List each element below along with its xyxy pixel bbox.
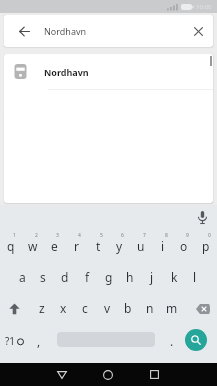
staticText: 6 [121,232,124,239]
button[interactable]: b [118,298,138,318]
staticText: a [19,269,26,285]
staticText: Nordhavn [44,25,87,37]
staticText: x [60,300,67,316]
button[interactable]: k [164,267,184,287]
staticText: c [82,300,88,316]
button[interactable]: 7 [134,225,154,245]
button[interactable]: c [75,298,95,318]
staticText: k [171,269,178,285]
button[interactable]: 0 [199,225,217,245]
staticText: r [74,238,79,254]
button[interactable]: 4 [69,225,89,245]
button[interactable]: z [32,298,52,318]
staticText: e [51,238,58,254]
button[interactable]: 3 [47,225,67,245]
button[interactable]: i [153,236,173,256]
staticText: w [28,238,38,254]
staticText: 1 [13,232,16,239]
button[interactable] [94,363,122,386]
staticText: 10:00 [196,3,212,11]
staticText: d [61,269,69,285]
button[interactable] [192,300,214,318]
button[interactable]: u [131,236,151,256]
button[interactable]: m [162,298,182,318]
staticText: q [7,238,15,254]
button[interactable]: p [196,236,216,256]
button[interactable]: d [55,267,75,287]
button[interactable]: v [97,298,117,318]
staticText: 0 [208,232,211,239]
button[interactable]: w [23,236,43,256]
staticText: s [40,269,46,285]
staticText: Nordhavn [44,66,89,78]
staticText: l [193,269,197,285]
staticText: j [150,269,154,285]
staticText: 5 [100,232,103,239]
staticText: z [39,300,45,316]
staticText: u [137,238,145,254]
staticText: h [126,269,134,285]
staticText: m [166,300,178,316]
button[interactable] [185,329,207,351]
button[interactable]: . [162,331,182,351]
button[interactable]: a [12,267,32,287]
button[interactable]: q [1,236,21,256]
staticText: ?1 [5,334,16,348]
button[interactable]: j [142,267,162,287]
button[interactable]: n [140,298,160,318]
button[interactable] [192,208,212,228]
button[interactable] [183,15,213,47]
button[interactable]: t [88,236,108,256]
button[interactable]: x [53,298,73,318]
staticText: f [85,269,90,285]
staticText: 2 [35,232,38,239]
button[interactable]: Nordhavn [4,54,213,90]
staticText: . [170,333,174,349]
staticText: 9 [186,232,189,239]
staticText: b [124,300,132,316]
button[interactable]: l [185,267,205,287]
button[interactable] [3,300,25,318]
button[interactable]: f [77,267,97,287]
button[interactable]: 2 [26,225,46,245]
button[interactable]: 5 [91,225,111,245]
button[interactable]: y [109,236,129,256]
staticText: g [105,269,113,285]
button[interactable] [4,15,44,47]
staticText: 8 [165,232,168,239]
button[interactable]: o [174,236,194,256]
button[interactable]: e [44,236,64,256]
button[interactable]: 9 [177,225,197,245]
button[interactable] [48,363,76,386]
staticText: i [161,238,165,254]
button[interactable]: 8 [156,225,176,245]
button[interactable]: 1 [4,225,24,245]
button[interactable]: ?1 [1,331,27,350]
staticText: 3 [56,232,59,239]
button[interactable]: h [120,267,140,287]
staticText: n [146,300,154,316]
staticText: 4 [78,232,81,239]
staticText: o [180,238,188,254]
staticText: t [96,238,101,254]
staticText: , [37,333,41,349]
button[interactable]: g [99,267,119,287]
staticText: 7 [143,232,146,239]
button[interactable]: , [29,331,49,351]
staticText: p [202,238,210,254]
button[interactable] [140,363,168,386]
button[interactable]: s [33,267,53,287]
button[interactable]: r [66,236,86,256]
staticText: y [116,238,123,254]
staticText: v [104,300,111,316]
button[interactable]: 6 [112,225,132,245]
